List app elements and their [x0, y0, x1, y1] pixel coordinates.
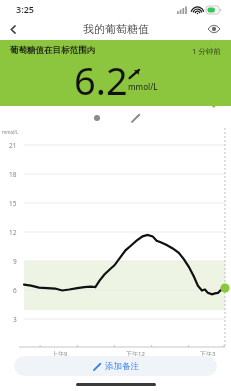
staticText: 18	[9, 170, 17, 179]
staticText: 上午9	[52, 350, 68, 356]
staticText: 3	[13, 315, 17, 324]
button[interactable]: Back	[0, 18, 26, 40]
staticText: 1 分钟前	[192, 46, 221, 56]
staticText: 15	[9, 199, 17, 208]
staticText: mmol/L	[128, 81, 158, 92]
staticText: 12	[9, 228, 17, 237]
button[interactable]: Settings	[203, 18, 225, 40]
staticText: 下午3	[200, 350, 216, 356]
staticText: 下午12	[126, 350, 145, 356]
button[interactable]: Notes	[125, 108, 145, 128]
staticText: mmol/L	[2, 129, 19, 135]
staticText: 6.2	[74, 54, 128, 106]
staticText: 我的葡萄糖值	[83, 22, 149, 36]
staticText: 9	[13, 257, 17, 266]
button[interactable]: Glucose readings	[87, 108, 107, 128]
staticText: 6	[13, 286, 17, 295]
staticText: 3:25	[16, 3, 34, 15]
staticText: 21	[9, 141, 17, 150]
staticText: 葡萄糖值在目标范围内	[10, 45, 95, 56]
staticText: 添加备注	[105, 361, 139, 372]
button[interactable]: 添加备注	[14, 356, 217, 376]
